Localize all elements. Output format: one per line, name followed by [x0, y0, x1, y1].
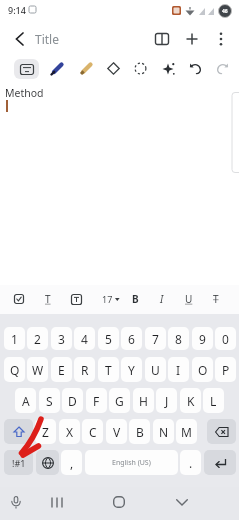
button[interactable]: 7	[145, 327, 166, 350]
button[interactable]: Z	[35, 419, 56, 444]
staticText: T	[213, 292, 219, 306]
staticText: W	[32, 362, 44, 378]
staticText: 17	[102, 293, 113, 305]
button[interactable]: 1	[4, 327, 25, 350]
button[interactable]: 17	[95, 288, 119, 310]
staticText: 1	[11, 331, 18, 347]
button[interactable]: O	[192, 357, 213, 382]
button[interactable]	[14, 59, 39, 79]
button[interactable]	[172, 492, 192, 512]
button[interactable]: I	[168, 357, 189, 382]
button[interactable]: E	[51, 357, 72, 382]
button[interactable]	[212, 58, 233, 79]
staticText: R	[81, 362, 89, 378]
staticText: B	[136, 424, 144, 440]
staticText: M	[181, 424, 192, 440]
button[interactable]: 4	[74, 327, 95, 350]
button[interactable]: R	[74, 357, 95, 382]
button[interactable]	[185, 58, 206, 79]
button[interactable]	[10, 288, 28, 310]
button[interactable]: K	[180, 388, 201, 413]
button[interactable]: C	[82, 419, 103, 444]
button[interactable]: J	[156, 388, 177, 413]
button[interactable]	[210, 28, 232, 50]
button[interactable]: B	[127, 288, 144, 310]
button[interactable]	[8, 28, 32, 50]
staticText: V	[113, 424, 121, 440]
button[interactable]: Y	[121, 357, 142, 382]
button[interactable]: English (US)	[85, 450, 178, 475]
button[interactable]	[47, 492, 67, 512]
button[interactable]: .	[180, 450, 201, 475]
button[interactable]	[46, 58, 67, 79]
staticText: ,	[70, 455, 74, 471]
button[interactable]: 3	[51, 327, 72, 350]
staticText: B	[132, 292, 139, 306]
staticText: Y	[128, 362, 135, 378]
button[interactable]	[207, 419, 236, 444]
staticText: F	[93, 393, 100, 409]
button[interactable]	[151, 28, 173, 50]
button[interactable]: N	[153, 419, 174, 444]
staticText: K	[187, 393, 195, 409]
button[interactable]: T	[98, 357, 119, 382]
staticText: 46	[222, 8, 228, 15]
button[interactable]: D	[62, 388, 83, 413]
button[interactable]	[181, 28, 203, 50]
button[interactable]: U	[180, 288, 197, 310]
button[interactable]: Q	[4, 357, 25, 382]
button[interactable]: T	[207, 288, 224, 310]
staticText: P	[222, 362, 230, 378]
staticText: X	[66, 424, 74, 440]
staticText: A	[22, 393, 30, 409]
button[interactable]: W	[27, 357, 48, 382]
button[interactable]	[103, 58, 124, 79]
staticText: !#1	[12, 457, 26, 469]
button[interactable]: F	[86, 388, 107, 413]
button[interactable]: 5	[98, 327, 119, 350]
staticText: Title	[35, 31, 59, 47]
staticText: 9	[199, 331, 206, 347]
staticText: .	[189, 455, 193, 471]
button[interactable]: L	[203, 388, 224, 413]
button[interactable]: X	[59, 419, 80, 444]
staticText: 8	[175, 331, 182, 347]
button[interactable]: M	[176, 419, 197, 444]
button[interactable]	[75, 58, 96, 79]
button[interactable]	[67, 288, 85, 310]
button[interactable]: T	[39, 288, 56, 310]
staticText: 7	[152, 331, 159, 347]
staticText: C	[89, 424, 97, 440]
button[interactable]: G	[109, 388, 130, 413]
button[interactable]: H	[133, 388, 154, 413]
button[interactable]	[157, 58, 178, 79]
button[interactable]	[4, 419, 33, 444]
button[interactable]	[6, 492, 26, 512]
staticText: U	[185, 292, 193, 306]
staticText: H	[139, 393, 148, 409]
staticText: S	[46, 393, 53, 409]
button[interactable]: ,	[61, 450, 82, 475]
button[interactable]: 6	[121, 327, 142, 350]
staticText: N	[159, 424, 169, 440]
button[interactable]: B	[129, 419, 150, 444]
button[interactable]	[204, 450, 236, 475]
button[interactable]: 2	[27, 327, 48, 350]
button[interactable]: !#1	[4, 450, 33, 475]
button[interactable]: S	[39, 388, 60, 413]
button[interactable]	[109, 492, 129, 512]
staticText: 6	[128, 331, 135, 347]
button[interactable]	[130, 58, 151, 79]
staticText: D	[68, 393, 77, 409]
button[interactable]: A	[15, 388, 36, 413]
button[interactable]: U	[145, 357, 166, 382]
staticText: U	[151, 362, 160, 378]
button[interactable]: P	[215, 357, 236, 382]
staticText: 5	[105, 331, 112, 347]
button[interactable]	[36, 450, 59, 475]
button[interactable]: I	[154, 288, 169, 310]
button[interactable]: 8	[168, 327, 189, 350]
button[interactable]: V	[106, 419, 127, 444]
button[interactable]: 9	[192, 327, 213, 350]
button[interactable]: 0	[215, 327, 236, 350]
